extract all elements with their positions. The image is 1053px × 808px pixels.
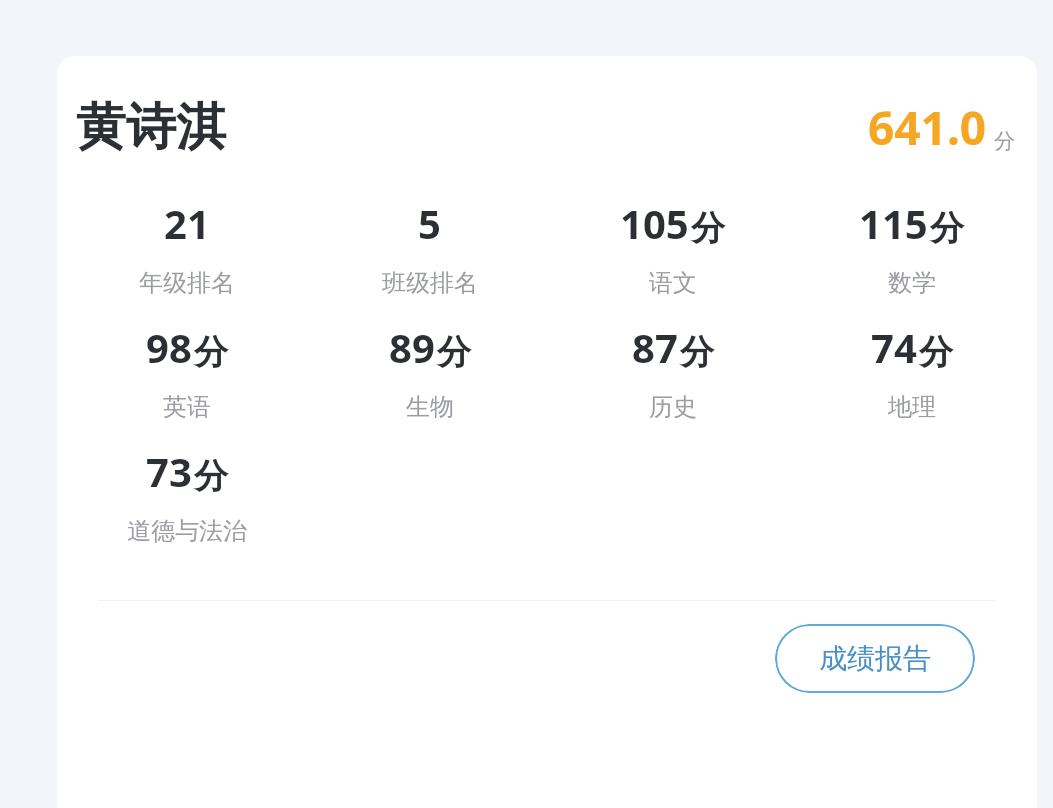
staticText: 班级排名 bbox=[382, 268, 478, 298]
staticText: 105 bbox=[620, 196, 689, 250]
staticText: 分 bbox=[194, 331, 228, 374]
staticText: 历史 bbox=[649, 392, 697, 422]
staticText: 21 bbox=[164, 196, 210, 250]
staticText: 生物 bbox=[406, 392, 454, 422]
staticText: 分 bbox=[919, 331, 953, 374]
button[interactable]: 87 bbox=[551, 320, 794, 444]
button[interactable]: 21 bbox=[65, 196, 308, 320]
staticText: 分 bbox=[691, 207, 725, 250]
button[interactable]: 89 bbox=[308, 320, 551, 444]
staticText: 分 bbox=[194, 455, 228, 498]
button[interactable]: 5 bbox=[308, 196, 551, 320]
staticText: 分 bbox=[680, 331, 714, 374]
staticText: 73 bbox=[146, 444, 192, 498]
staticText: 黄诗淇 bbox=[76, 96, 226, 159]
staticText: 5 bbox=[418, 196, 441, 250]
staticText: 道德与法治 bbox=[127, 516, 247, 546]
staticText: 成绩报告 bbox=[819, 641, 931, 676]
staticText: 74 bbox=[871, 320, 917, 374]
staticText: 分 bbox=[994, 128, 1015, 154]
staticText: 数学 bbox=[888, 268, 936, 298]
button[interactable]: 73 bbox=[65, 444, 308, 568]
staticText: 115 bbox=[859, 196, 928, 250]
button[interactable]: 成绩报告 bbox=[775, 624, 975, 693]
button[interactable]: 115 bbox=[794, 196, 1029, 320]
staticText: 地理 bbox=[888, 392, 936, 422]
staticText: 87 bbox=[632, 320, 678, 374]
staticText: 年级排名 bbox=[139, 268, 235, 298]
button[interactable]: 74 bbox=[794, 320, 1029, 444]
button[interactable]: 105 bbox=[551, 196, 794, 320]
staticText: 98 bbox=[146, 320, 192, 374]
staticText: 641.0 bbox=[868, 96, 987, 159]
staticText: 语文 bbox=[649, 268, 697, 298]
staticText: 分 bbox=[930, 207, 964, 250]
staticText: 分 bbox=[437, 331, 471, 374]
button[interactable]: 98 bbox=[65, 320, 308, 444]
staticText: 英语 bbox=[163, 392, 211, 422]
staticText: 89 bbox=[389, 320, 435, 374]
